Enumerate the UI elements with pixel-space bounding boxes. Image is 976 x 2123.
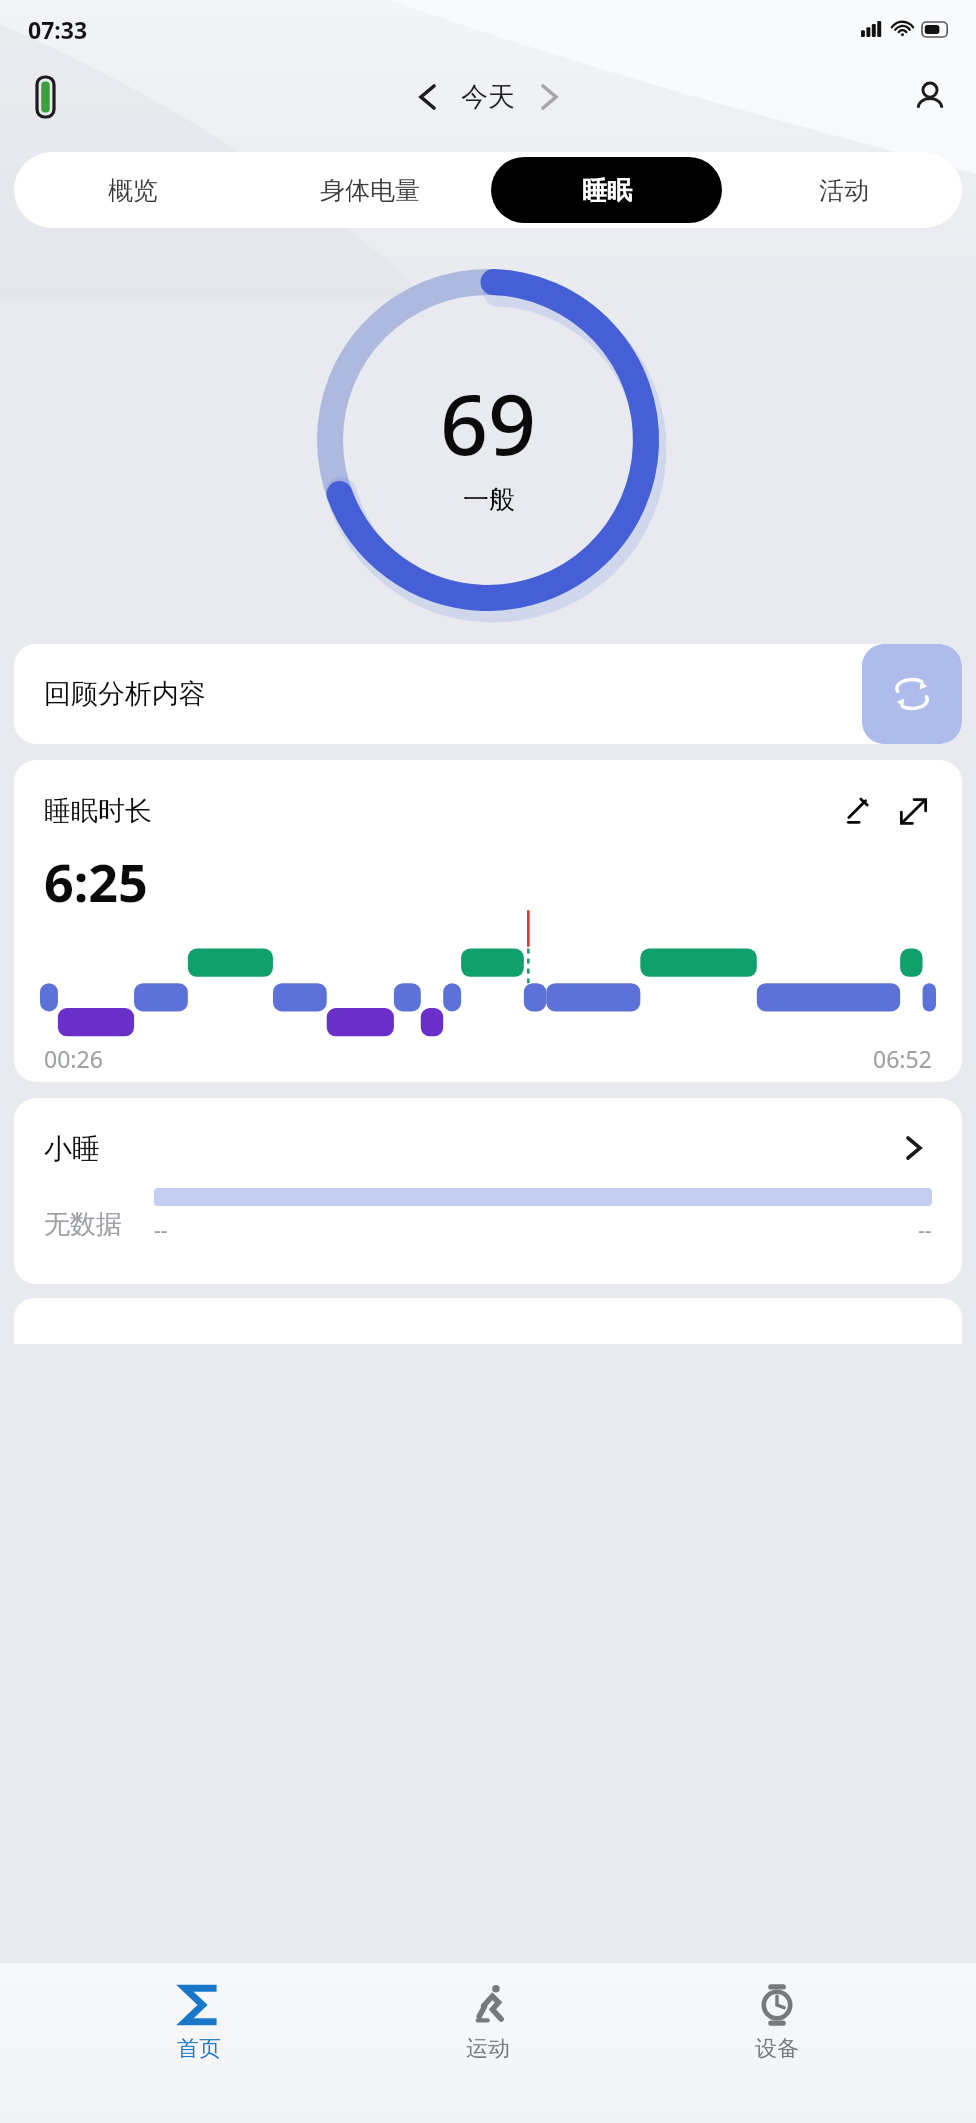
button[interactable]: 设备 (687, 1977, 867, 2069)
button[interactable]: 活动 (728, 157, 959, 223)
button[interactable]: 睡眠 (491, 157, 722, 223)
staticText: 睡眠时长 (44, 794, 152, 828)
button[interactable]: 今天 (461, 80, 515, 114)
button[interactable]: 运动 (398, 1977, 578, 2069)
staticText: 回顾分析内容 (44, 677, 206, 711)
button[interactable]: 概览 (17, 157, 248, 223)
staticText: 一般 (463, 483, 515, 516)
button[interactable]: 小睡 (14, 1098, 962, 1284)
staticText: 身体电量 (320, 175, 420, 206)
staticText: 06:52 (873, 1043, 932, 1074)
staticText: 07:33 (28, 14, 88, 45)
button[interactable]: Nap details (892, 1126, 936, 1170)
staticText: -- (154, 1216, 168, 1245)
button[interactable]: Expand (890, 788, 936, 834)
button[interactable]: 睡眠时长 (14, 760, 962, 1082)
staticText: -- (918, 1216, 932, 1245)
button[interactable]: Refresh analysis (862, 644, 962, 744)
staticText: 设备 (755, 2035, 799, 2063)
staticText: 无数据 (44, 1208, 122, 1241)
button[interactable]: 身体电量 (254, 157, 485, 223)
staticText: 6:25 (44, 846, 148, 917)
button[interactable]: Previous day (407, 77, 447, 117)
staticText: 活动 (819, 175, 869, 206)
staticText: 69 (440, 365, 537, 479)
button[interactable]: Next day (529, 77, 569, 117)
staticText: 概览 (108, 175, 158, 206)
staticText: 睡眠 (582, 175, 632, 206)
staticText: 00:26 (44, 1043, 103, 1074)
staticText: 运动 (466, 2035, 510, 2063)
staticText: 小睡 (44, 1131, 100, 1166)
button[interactable]: 回顾分析内容 (14, 644, 962, 744)
button[interactable]: Profile (906, 73, 954, 121)
staticText: 首页 (177, 2035, 221, 2063)
button[interactable]: Edit (834, 788, 880, 834)
button[interactable]: 首页 (109, 1977, 289, 2069)
button[interactable]: Battery (22, 74, 68, 120)
